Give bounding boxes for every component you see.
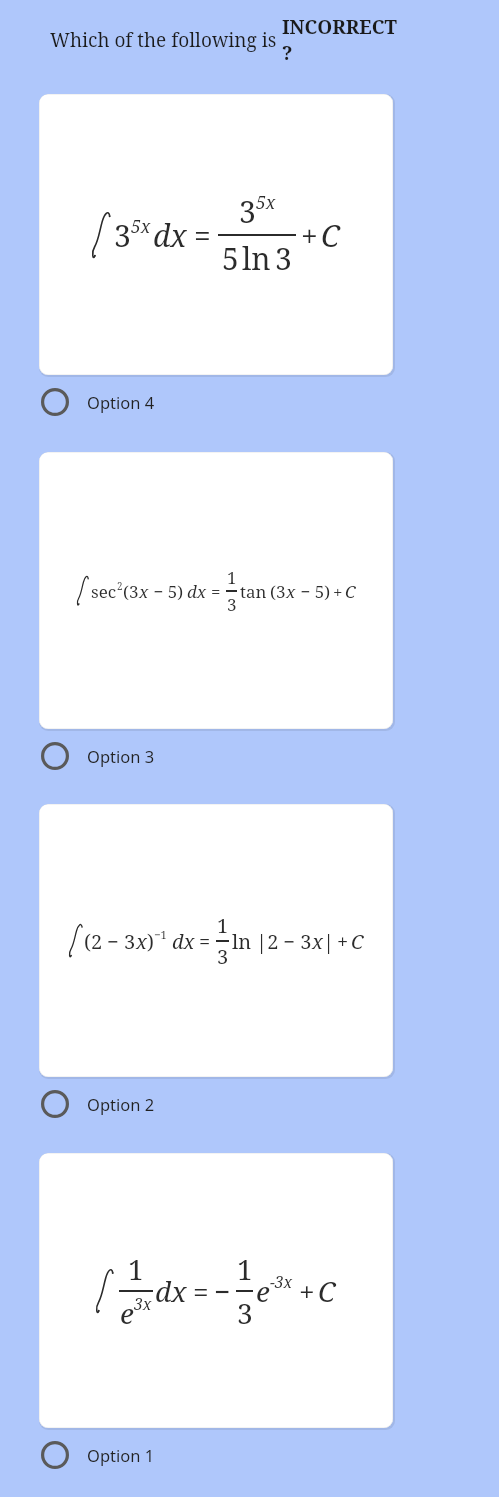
- button[interactable]: Option 1: [39, 1430, 395, 1480]
- staticText: +: [333, 580, 343, 603]
- staticText: −: [214, 1272, 231, 1310]
- staticText: sec: [91, 580, 117, 603]
- staticText: e: [256, 1272, 270, 1310]
- staticText: dx: [155, 1272, 187, 1310]
- staticText: =: [211, 580, 221, 603]
- staticText: 5x: [256, 190, 276, 214]
- staticText: tan: [240, 580, 267, 603]
- staticText: Which of the following is: [50, 27, 282, 53]
- staticText: dx: [153, 215, 187, 256]
- staticText: 3x: [134, 1293, 152, 1314]
- staticText: x: [136, 928, 147, 955]
- button[interactable]: Option 2: [39, 1079, 395, 1129]
- staticText: C: [321, 215, 340, 256]
- staticText: −3x: [270, 1271, 293, 1292]
- staticText: 3: [227, 593, 237, 616]
- staticText: |2 − 3: [256, 928, 312, 955]
- staticText: 2: [117, 579, 123, 592]
- staticText: =: [194, 215, 211, 256]
- staticText: C: [351, 928, 364, 955]
- staticText: dx: [187, 580, 207, 603]
- staticText: C: [318, 1272, 336, 1310]
- button[interactable]: Option 4: [39, 377, 395, 427]
- staticText: 1: [227, 566, 237, 589]
- staticText: INCORRECT?: [282, 14, 406, 66]
- staticText: x: [312, 928, 323, 955]
- staticText: 3: [239, 191, 256, 232]
- staticText: +: [301, 215, 318, 256]
- staticText: − 5): [296, 580, 331, 603]
- staticText: 5: [222, 238, 239, 279]
- staticText: (2 − 3: [84, 928, 136, 955]
- staticText: +: [337, 928, 349, 955]
- staticText: 3: [217, 943, 229, 970]
- staticText: 3: [237, 1294, 253, 1332]
- staticText: ln: [232, 928, 252, 955]
- staticText: 1: [237, 1250, 253, 1288]
- button[interactable]: Option 3: [39, 731, 395, 781]
- staticText: 3: [275, 238, 292, 279]
- staticText: 1: [128, 1250, 144, 1288]
- staticText: |: [323, 928, 335, 955]
- staticText: ): [147, 928, 154, 955]
- staticText: ln: [242, 238, 271, 279]
- staticText: e: [120, 1294, 134, 1332]
- staticText: x: [139, 580, 149, 603]
- staticText: =: [193, 1272, 209, 1310]
- staticText: (3: [123, 580, 139, 603]
- button[interactable]: (2 − 3: [39, 804, 393, 1077]
- staticText: 5x: [131, 214, 151, 238]
- staticText: Option 3: [87, 745, 155, 767]
- staticText: (3: [270, 580, 286, 603]
- staticText: Option 2: [87, 1093, 155, 1115]
- staticText: =: [199, 928, 211, 955]
- staticText: Option 4: [87, 391, 155, 413]
- staticText: Option 1: [87, 1444, 155, 1466]
- button[interactable]: 1: [39, 1153, 393, 1428]
- staticText: 3: [114, 215, 131, 256]
- staticText: dx: [172, 928, 195, 955]
- staticText: C: [345, 580, 356, 603]
- staticText: +: [299, 1272, 315, 1310]
- staticText: − 5): [149, 580, 184, 603]
- staticText: 1: [217, 912, 229, 939]
- staticText: −1: [154, 927, 167, 942]
- staticText: x: [286, 580, 296, 603]
- button[interactable]: sec: [39, 452, 393, 729]
- button[interactable]: 3: [39, 94, 393, 375]
